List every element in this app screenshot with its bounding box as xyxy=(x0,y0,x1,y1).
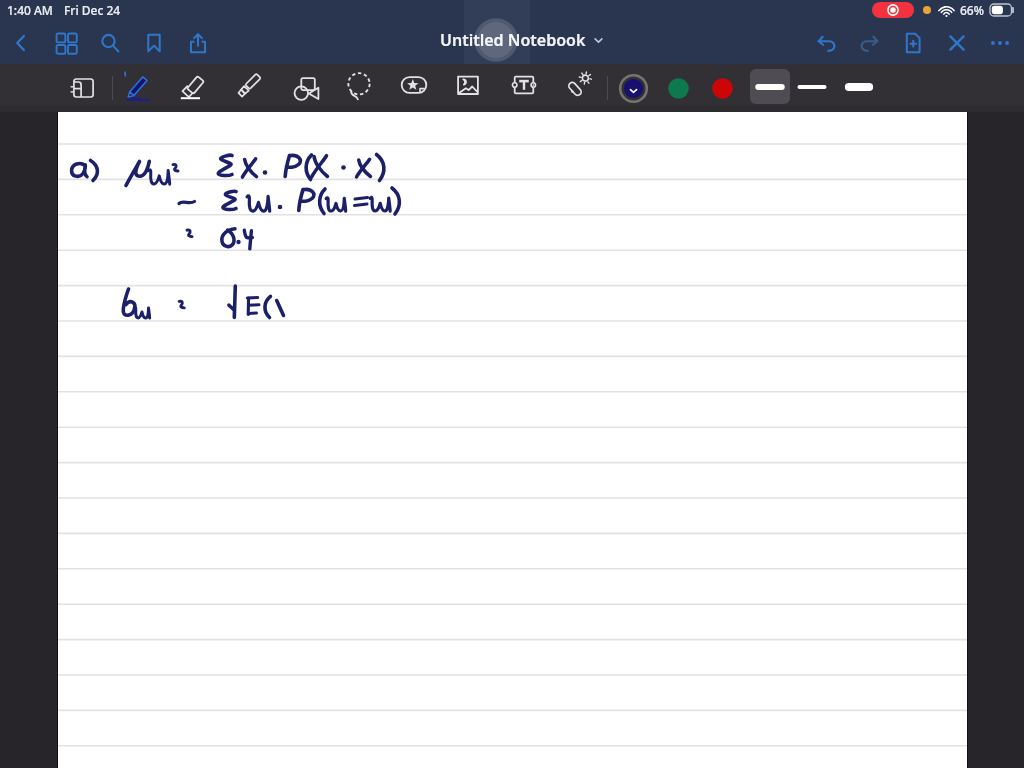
button[interactable]: Pages xyxy=(50,27,82,59)
button[interactable]: Undo xyxy=(811,27,843,59)
button[interactable]: Stroke width xyxy=(839,69,879,104)
button[interactable]: Stroke width xyxy=(792,69,832,104)
button[interactable]: Lasso xyxy=(340,66,378,104)
button[interactable]: Shapes xyxy=(285,66,323,104)
button[interactable]: Colour xyxy=(703,69,741,107)
button[interactable]: Colour xyxy=(659,69,697,107)
button[interactable]: Colour xyxy=(614,69,652,107)
button[interactable]: New page xyxy=(897,27,929,59)
button[interactable]: Redo xyxy=(853,27,885,59)
button[interactable]: Bookmark xyxy=(138,27,170,59)
button[interactable]: Stroke width xyxy=(750,69,790,104)
button[interactable]: Page view xyxy=(63,66,101,104)
staticText: 66% xyxy=(960,2,984,18)
button[interactable]: Highlighter xyxy=(231,66,269,104)
staticText: 1:40 AM xyxy=(7,2,53,18)
button[interactable]: Search xyxy=(94,27,126,59)
button[interactable]: Share xyxy=(182,27,214,59)
button[interactable]: Magic xyxy=(559,66,597,104)
button[interactable]: Untitled Notebook xyxy=(440,29,603,51)
button[interactable]: Pen xyxy=(119,66,157,104)
button[interactable]: Close xyxy=(941,27,973,59)
button[interactable]: Text xyxy=(505,66,543,104)
staticText: Fri Dec 24 xyxy=(64,2,121,18)
button[interactable]: Image xyxy=(449,66,487,104)
button[interactable]: Sticker xyxy=(395,66,433,104)
button[interactable]: Eraser xyxy=(175,66,213,104)
staticText: Untitled Notebook xyxy=(440,29,586,51)
button[interactable]: More xyxy=(984,27,1016,59)
button[interactable]: Back xyxy=(5,27,37,59)
